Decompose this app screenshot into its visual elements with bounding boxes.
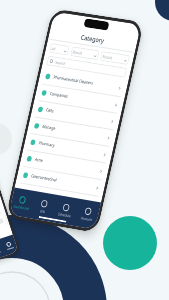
staticText: All <box>51 46 56 52</box>
button[interactable]: Gastrointestinal <box>15 166 106 197</box>
button[interactable]: Job <box>29 191 57 222</box>
staticText: Result <box>102 54 113 60</box>
button[interactable]: Dashboard <box>8 187 35 218</box>
staticText: Account <box>80 215 93 222</box>
button[interactable]: Pharmaceutical Cleaners <box>38 67 128 98</box>
staticText: Manage <box>42 124 57 132</box>
staticText: Companies <box>49 91 69 100</box>
staticText: Schedule <box>57 211 72 218</box>
button[interactable]: Pharmacy <box>23 133 113 164</box>
staticText: Dashboard <box>13 204 29 211</box>
button[interactable]: All <box>49 43 70 56</box>
button[interactable]: Result <box>70 46 100 60</box>
button[interactable]: Companies <box>34 84 125 114</box>
button[interactable]: Acne <box>19 150 110 181</box>
button[interactable]: Cells <box>30 100 121 131</box>
staticText: Category <box>80 33 105 45</box>
staticText: Search <box>55 60 66 66</box>
staticText: Result <box>72 49 83 56</box>
staticText: Pharmacy <box>38 140 55 149</box>
staticText: Acne <box>34 157 44 164</box>
button[interactable]: Result <box>100 51 130 65</box>
staticText: Cells <box>45 107 55 114</box>
staticText: Gastrointestinal <box>30 173 58 184</box>
staticText: Pharmaceutical Cleaners <box>53 74 94 87</box>
button[interactable]: Schedule <box>51 195 79 226</box>
staticText: Job <box>40 208 46 214</box>
button[interactable]: Search <box>46 56 127 78</box>
button[interactable]: Manage <box>27 117 117 148</box>
button[interactable]: Account <box>73 199 101 230</box>
